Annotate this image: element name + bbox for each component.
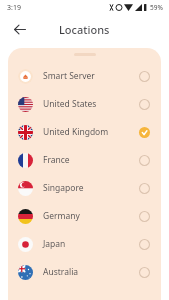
staticText: Locations <box>59 22 110 37</box>
button[interactable]: Smart Server <box>8 62 161 90</box>
button[interactable]: United Kingdom <box>8 118 161 146</box>
staticText: Australia <box>43 266 79 278</box>
button[interactable]: France <box>8 146 161 174</box>
staticText: Germany <box>43 210 80 222</box>
staticText: Singapore <box>43 182 84 194</box>
button[interactable]: Australia <box>8 258 161 286</box>
staticText: United Kingdom <box>43 126 109 138</box>
staticText: France <box>43 154 70 166</box>
staticText: Smart Server <box>43 70 95 82</box>
button[interactable]: United States <box>8 90 161 118</box>
staticText: 59% <box>150 3 163 12</box>
button[interactable]: Back <box>8 18 30 40</box>
button[interactable]: Japan <box>8 230 161 258</box>
staticText: 3:19 <box>7 3 21 13</box>
button[interactable]: Germany <box>8 202 161 230</box>
staticText: Japan <box>43 238 66 250</box>
staticText: United States <box>43 98 97 110</box>
button[interactable]: Singapore <box>8 174 161 202</box>
